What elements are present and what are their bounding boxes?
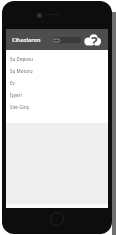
button[interactable]: İşyeri (6, 89, 108, 101)
button[interactable]: Ev (6, 77, 108, 89)
staticText: Site Giriş (10, 104, 29, 110)
button[interactable]: Help (83, 33, 101, 47)
staticText: Cihazlarım (12, 36, 41, 43)
button[interactable]: Toggle (53, 37, 81, 43)
staticText: Ev (10, 80, 15, 86)
button[interactable]: Site Giriş (6, 101, 108, 113)
staticText: İşyeri (10, 92, 22, 98)
staticText: Su Deposu (10, 56, 34, 62)
button[interactable]: Su Motoru (6, 65, 108, 77)
staticText: ? (91, 32, 98, 46)
button[interactable]: Su Deposu (6, 53, 108, 65)
staticText: Su Motoru (10, 68, 33, 74)
